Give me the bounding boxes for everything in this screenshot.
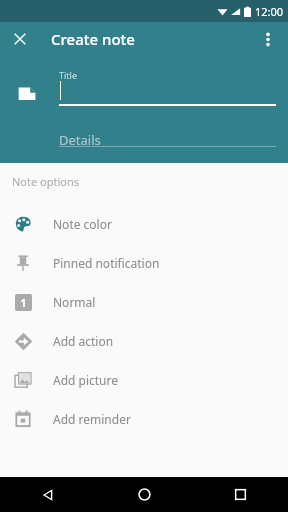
staticText: Note color	[53, 216, 112, 232]
staticText: Title	[59, 69, 77, 81]
button[interactable]: Add action	[0, 321, 288, 360]
button[interactable]: Add reminder	[0, 399, 288, 438]
button[interactable]: More options	[252, 23, 284, 55]
staticText: Add action	[53, 333, 114, 349]
staticText: 12:00	[255, 4, 284, 19]
staticText: Pinned notification	[53, 255, 160, 271]
button[interactable]: Close	[4, 23, 36, 55]
button[interactable]: Add picture	[0, 360, 288, 399]
button[interactable]: Recent apps	[192, 477, 288, 512]
staticText: 1	[20, 295, 27, 310]
button[interactable]: Details	[59, 131, 101, 149]
button[interactable]: Note color	[0, 204, 288, 243]
button[interactable]: Pinned notification	[0, 243, 288, 282]
staticText: Normal	[53, 294, 96, 310]
button[interactable]: Back	[0, 477, 96, 512]
staticText: Add reminder	[53, 411, 131, 427]
staticText: Add picture	[53, 372, 119, 388]
staticText: Note options	[12, 174, 80, 189]
button[interactable]: 1	[0, 282, 288, 321]
button[interactable]: Home	[96, 477, 192, 512]
staticText: Create note	[51, 29, 135, 49]
